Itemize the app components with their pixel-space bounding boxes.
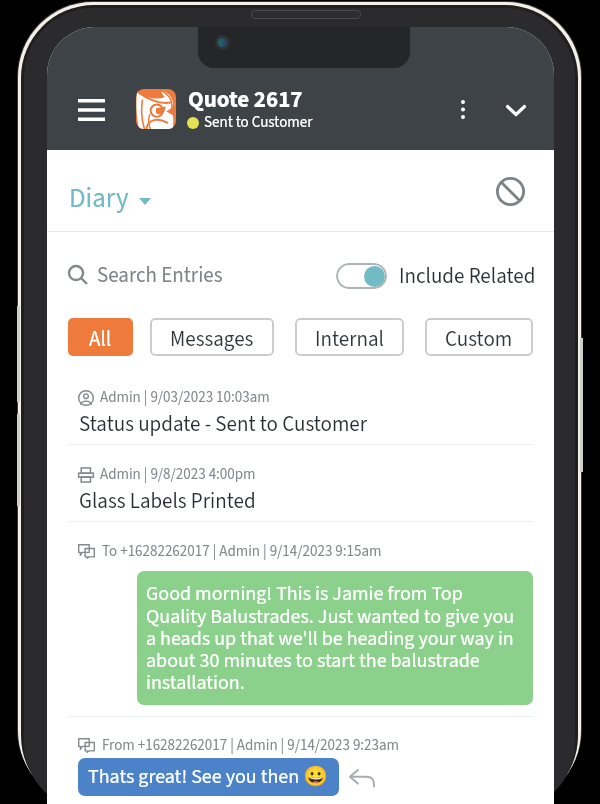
button[interactable]: From +16282262017 | Admin | 9/14/2023 9:… bbox=[47, 731, 554, 804]
button[interactable]: Expand bbox=[495, 89, 537, 131]
staticText: Messages bbox=[170, 324, 254, 354]
button[interactable]: Diary bbox=[69, 179, 151, 217]
button[interactable]: More options bbox=[445, 91, 481, 127]
button[interactable]: Include Related bbox=[336, 261, 536, 291]
staticText: Admin | 9/03/2023 10:03am bbox=[100, 387, 270, 408]
staticText: Admin | 9/8/2023 4:00pm bbox=[100, 464, 256, 485]
staticText: From +16282262017 | Admin | 9/14/2023 9:… bbox=[102, 735, 400, 756]
staticText: Diary bbox=[69, 179, 129, 217]
staticText: Thats great! See you then 😀 bbox=[88, 763, 329, 791]
button[interactable]: Admin | 9/03/2023 10:03am bbox=[47, 387, 554, 444]
button[interactable]: Messages bbox=[150, 318, 274, 356]
button[interactable]: Menu bbox=[60, 88, 122, 132]
button[interactable]: Custom bbox=[425, 318, 533, 356]
button[interactable]: Admin | 9/8/2023 4:00pm bbox=[47, 464, 554, 520]
staticText: Good morning! This is Jamie from Top Qua… bbox=[146, 580, 524, 697]
staticText: Sent to Customer bbox=[204, 112, 313, 133]
staticText: All bbox=[89, 324, 112, 354]
staticText: Custom bbox=[445, 324, 513, 354]
staticText: Status update - Sent to Customer bbox=[79, 409, 368, 439]
staticText: Include Related bbox=[399, 261, 536, 291]
button[interactable]: To +16282262017 | Admin | 9/14/2023 9:15… bbox=[47, 538, 554, 716]
staticText: Search Entries bbox=[97, 260, 223, 290]
button[interactable]: All bbox=[68, 318, 133, 356]
staticText: Glass Labels Printed bbox=[79, 486, 256, 516]
staticText: Internal bbox=[315, 324, 384, 354]
staticText: To +16282262017 | Admin | 9/14/2023 9:15… bbox=[102, 541, 382, 562]
button[interactable]: Block bbox=[488, 169, 532, 213]
staticText: Quote 2617 bbox=[188, 83, 303, 116]
button[interactable]: Internal bbox=[295, 318, 404, 356]
